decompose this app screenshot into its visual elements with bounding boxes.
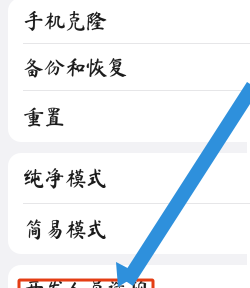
staticText: 手机克隆 bbox=[23, 10, 107, 31]
button[interactable]: 备份和恢复 bbox=[8, 44, 250, 90]
staticText: 纯净模式 bbox=[23, 167, 107, 189]
button[interactable]: 纯净模式 bbox=[8, 153, 250, 203]
button[interactable]: 重置 bbox=[8, 91, 250, 142]
staticText: 重置 bbox=[23, 106, 65, 127]
button[interactable]: 开发人员选项 bbox=[8, 265, 250, 288]
button[interactable]: 简易模式 bbox=[8, 204, 250, 254]
staticText: 开发人员选项 bbox=[23, 277, 149, 288]
button[interactable]: 手机克隆 bbox=[8, 0, 250, 43]
staticText: 简易模式 bbox=[23, 218, 107, 240]
staticText: 备份和恢复 bbox=[23, 56, 128, 78]
